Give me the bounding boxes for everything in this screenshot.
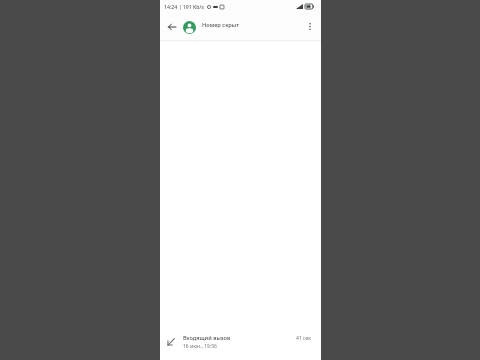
button[interactable]: More options [303,20,316,33]
staticText: 16 июн., 19:56 [183,343,217,350]
staticText: 14:24 | 191 Kb/s [164,3,205,10]
button[interactable]: Входящий вызов [160,330,321,354]
button[interactable]: Back [165,20,178,33]
staticText: 41 сек [296,335,311,342]
staticText: Входящий вызов [183,334,231,342]
staticText: Номер скрыт [202,21,240,29]
